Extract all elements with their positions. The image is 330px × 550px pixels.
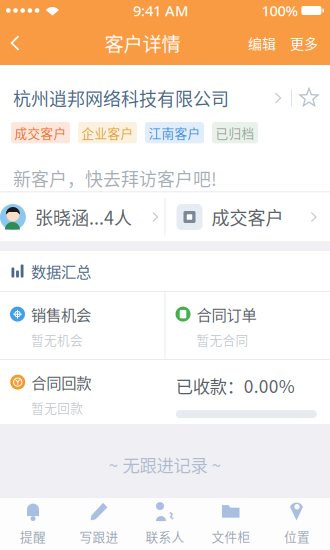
staticText: 编辑 (248, 33, 276, 53)
staticText: 暂无机会 (31, 330, 83, 348)
button[interactable]: 提醒 (0, 497, 66, 550)
staticText: 写跟进 (79, 527, 118, 545)
staticText: 客户详情 (104, 29, 180, 57)
staticText: 联系人 (145, 527, 184, 545)
staticText: 江南客户 (148, 123, 200, 142)
staticText: 更多 (290, 33, 318, 53)
button[interactable]: 联系人 (132, 497, 198, 550)
staticText: 位置 (284, 527, 310, 545)
staticText: 成交客户 (14, 123, 66, 142)
staticText: 100% (261, 1, 297, 20)
button[interactable]: 位置 (264, 497, 330, 550)
button[interactable]: 销售机会 (0, 292, 164, 359)
button[interactable]: 更多 (283, 21, 325, 65)
staticText: 成交客户 (211, 204, 283, 230)
button[interactable]: 张晓涵...4人 (0, 192, 164, 241)
staticText: 提醒 (20, 527, 46, 545)
staticText: 数据汇总 (31, 260, 91, 282)
staticText: 新客户，快去拜访客户吧! (13, 165, 217, 191)
button[interactable]: 写跟进 (66, 497, 132, 550)
staticText: 杭州逍邦网络科技有限公司 (13, 85, 229, 111)
staticText: 销售机会 (31, 303, 91, 325)
button[interactable]: 成交客户 (165, 192, 330, 241)
staticText: 暂无回款 (31, 398, 83, 416)
button[interactable]: 文件柜 (198, 497, 264, 550)
staticText: 文件柜 (211, 527, 250, 545)
button[interactable]: 编辑 (241, 21, 283, 65)
staticText: 张晓涵...4人 (35, 204, 132, 230)
staticText: 已收款：0.00% (176, 373, 295, 398)
staticText: 9:41 AM (133, 1, 188, 20)
staticText: 暂无合同 (196, 330, 248, 348)
staticText: 合同回款 (31, 371, 91, 393)
staticText: ~ 无跟进记录 ~ (108, 452, 221, 477)
button[interactable]: Back (0, 21, 44, 65)
staticText: 已归档 (215, 123, 254, 142)
staticText: 企业客户 (81, 123, 133, 142)
button[interactable]: 合同回款 (0, 360, 165, 424)
button[interactable]: Favorite (292, 84, 326, 112)
staticText: 合同订单 (196, 303, 256, 325)
button[interactable]: Details (265, 85, 291, 111)
button[interactable]: 合同订单 (165, 292, 330, 359)
